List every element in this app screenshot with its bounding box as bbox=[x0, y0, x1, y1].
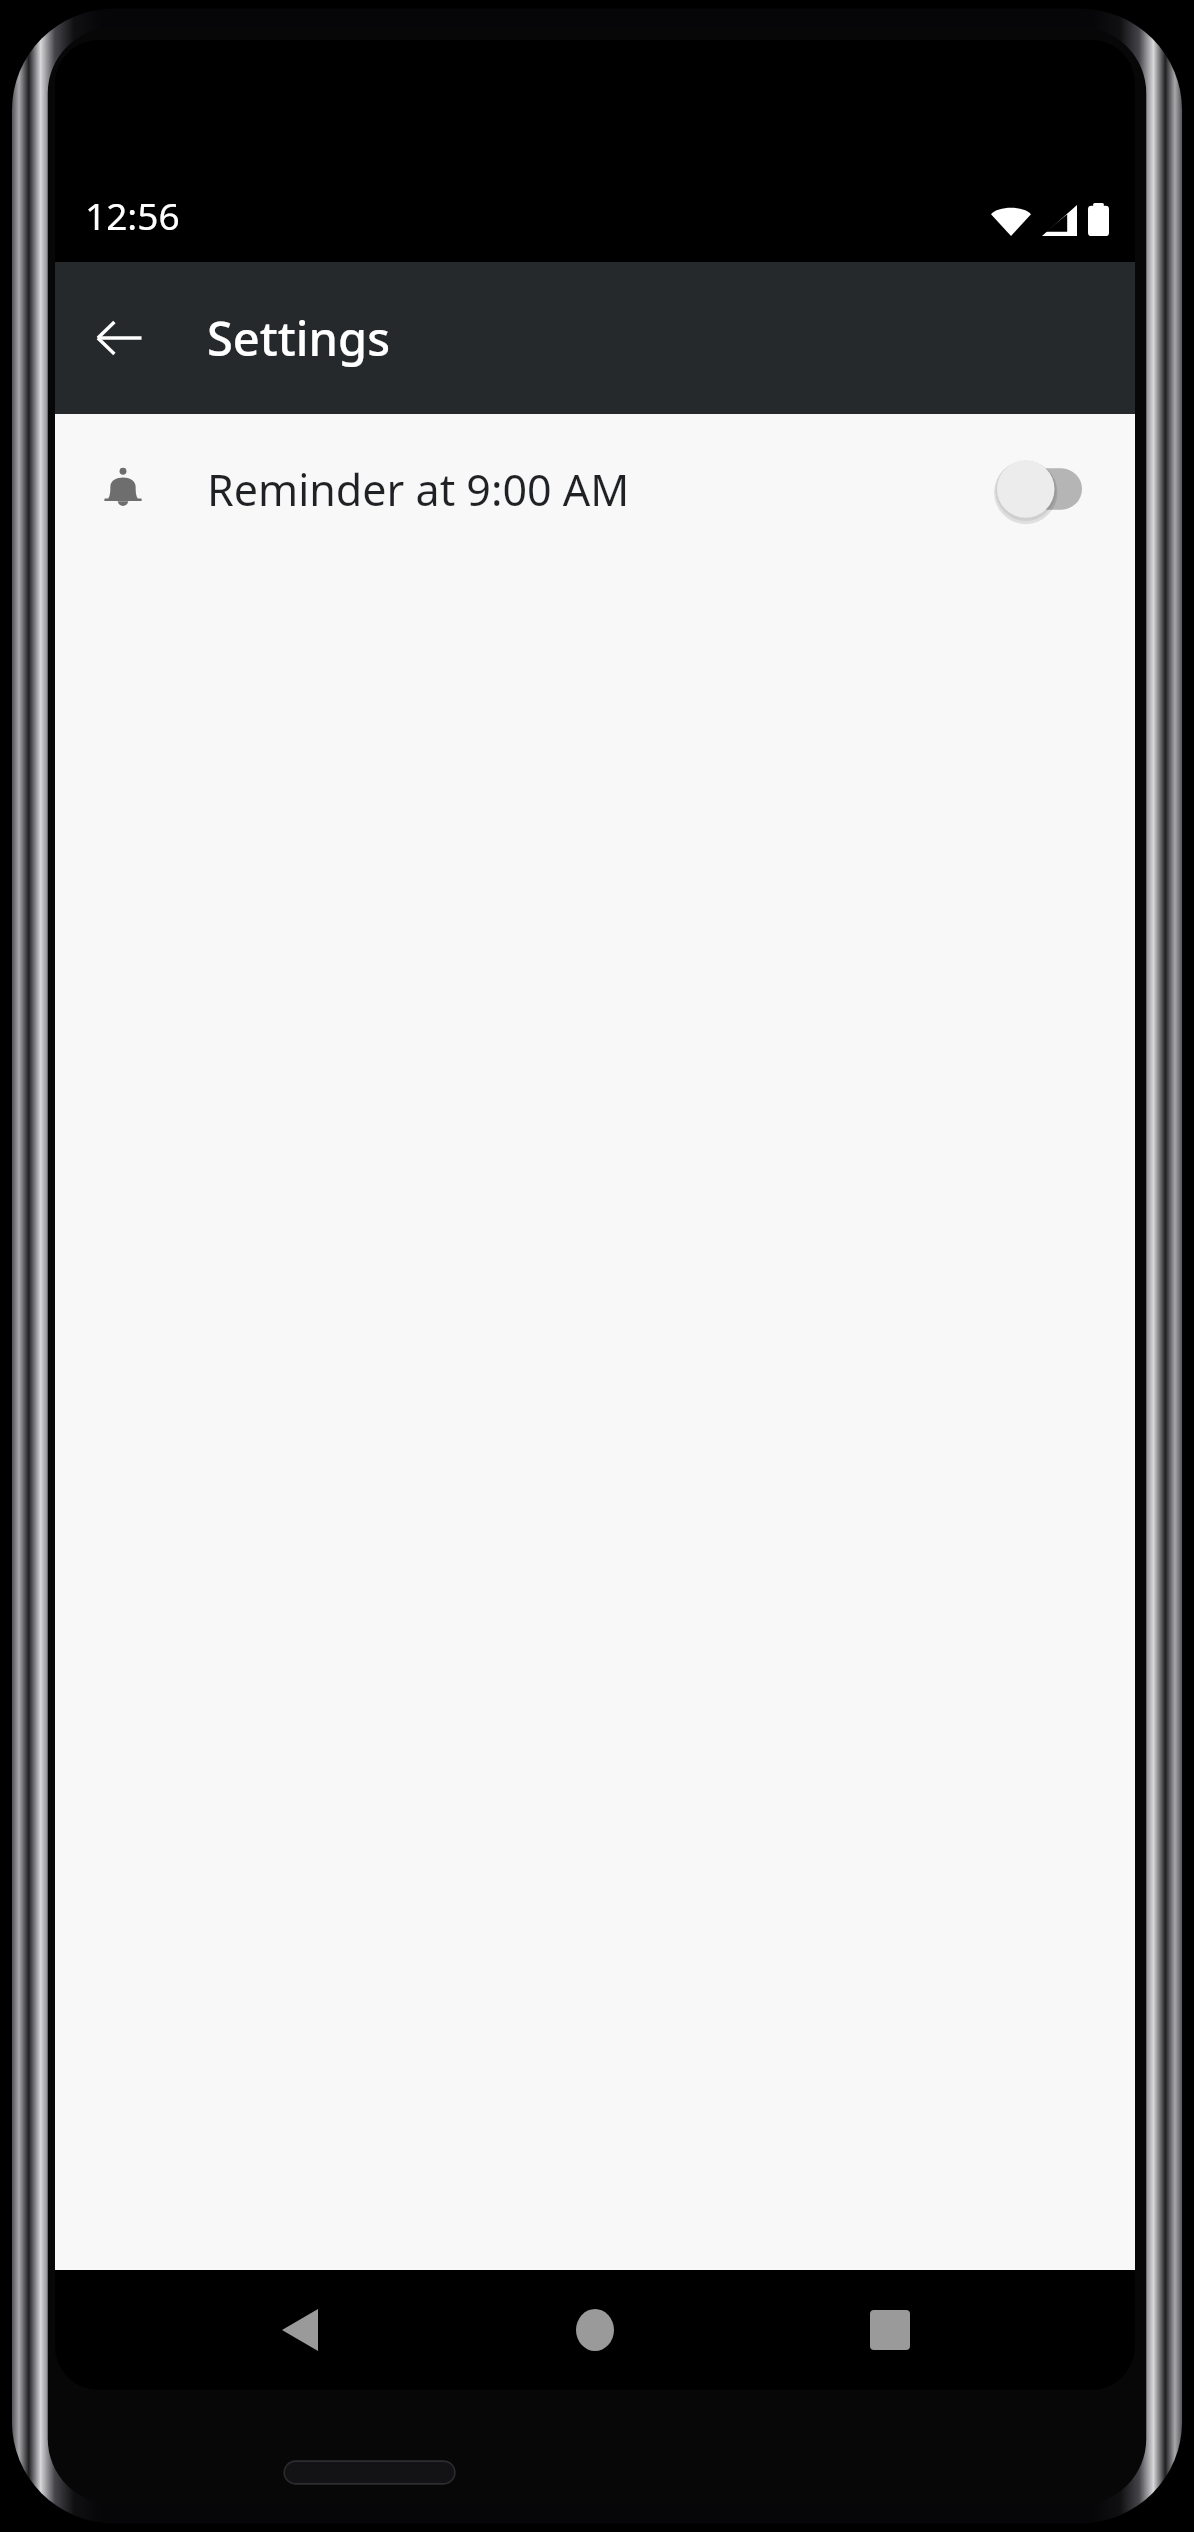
button[interactable]: Navigate up bbox=[79, 298, 159, 378]
button[interactable]: Reminder at 9:00 AM bbox=[55, 414, 1135, 564]
staticText: 12:56 bbox=[85, 190, 180, 240]
staticText: Reminder at 9:00 AM bbox=[207, 460, 983, 519]
button[interactable]: Reminder enabled toggle bbox=[983, 446, 1093, 532]
button[interactable]: Home bbox=[545, 2280, 645, 2380]
button[interactable]: Recent apps bbox=[840, 2280, 940, 2380]
button[interactable]: Back bbox=[250, 2280, 350, 2380]
staticText: Settings bbox=[207, 306, 390, 370]
